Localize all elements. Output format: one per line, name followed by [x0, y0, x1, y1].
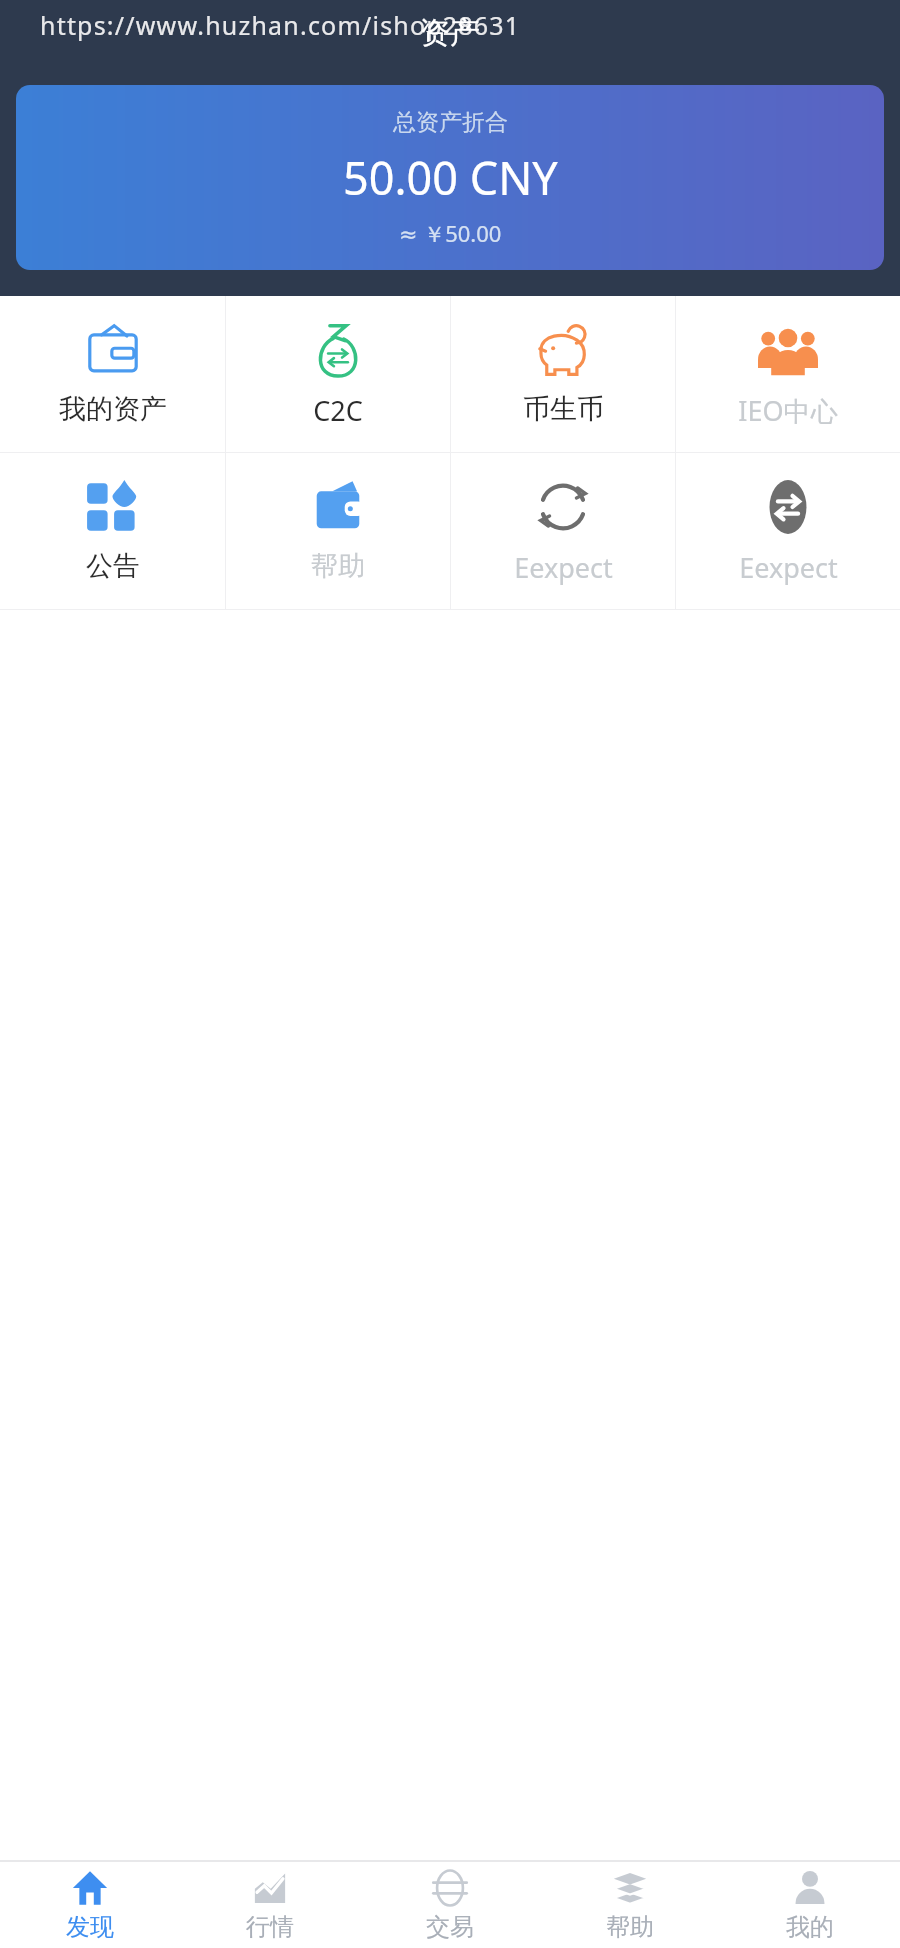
staticText: 帮助: [606, 1912, 654, 1942]
staticText: 总资产折合: [393, 108, 508, 137]
staticText: C2C: [313, 392, 363, 429]
staticText: 我的资产: [59, 392, 167, 426]
button[interactable]: 我的: [720, 1862, 900, 1948]
button[interactable]: 总资产折合: [16, 85, 884, 270]
staticText: 帮助: [311, 549, 365, 583]
button[interactable]: 行情: [180, 1862, 360, 1948]
button[interactable]: 我的资产: [0, 296, 225, 452]
staticText: 交易: [426, 1912, 474, 1942]
staticText: 行情: [246, 1912, 294, 1942]
staticText: https://www.huzhan.com/ishop28631: [40, 8, 521, 42]
staticText: 公告: [86, 549, 140, 583]
button[interactable]: 帮助: [540, 1862, 720, 1948]
staticText: Eexpect: [514, 549, 613, 586]
button[interactable]: 交易: [360, 1862, 540, 1948]
staticText: 资产: [420, 14, 480, 52]
button[interactable]: 发现: [0, 1862, 180, 1948]
button[interactable]: 公告: [0, 453, 225, 609]
button[interactable]: Eexpect: [451, 453, 675, 609]
staticText: ≈ ￥50.00: [399, 218, 502, 248]
staticText: 发现: [66, 1912, 114, 1942]
staticText: IEO中心: [738, 392, 838, 429]
staticText: Eexpect: [739, 549, 838, 586]
staticText: 我的: [786, 1912, 834, 1942]
staticText: 币生币: [523, 392, 604, 426]
button[interactable]: Eexpect: [676, 453, 900, 609]
button[interactable]: C2C: [226, 296, 450, 452]
button[interactable]: 币生币: [451, 296, 675, 452]
button[interactable]: 帮助: [226, 453, 450, 609]
button[interactable]: IEO中心: [676, 296, 900, 452]
staticText: 50.00 CNY: [343, 147, 558, 208]
